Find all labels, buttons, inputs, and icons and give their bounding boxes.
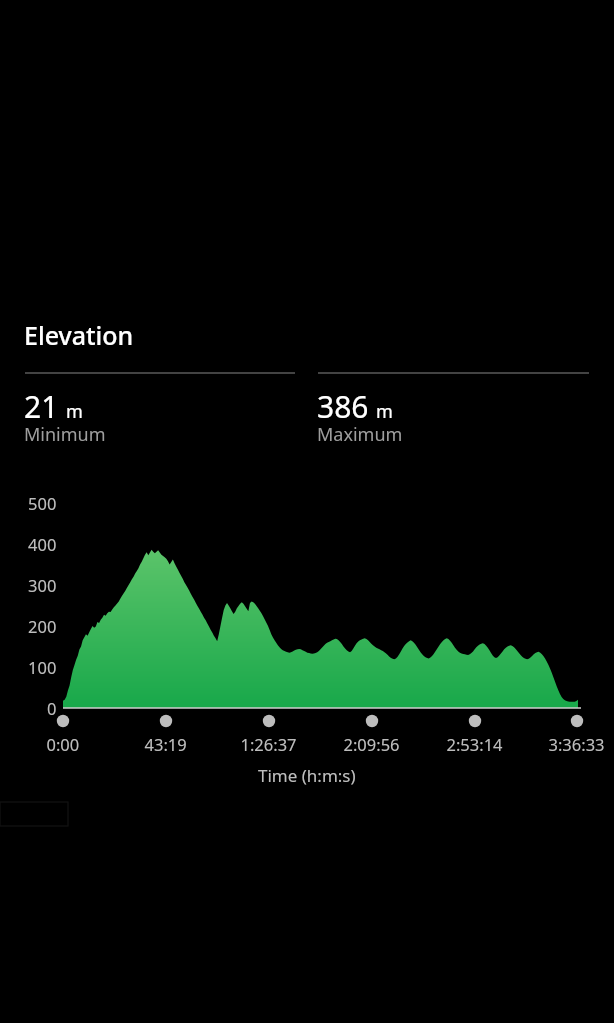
button[interactable]: Elevation statistics [0, 0, 614, 1023]
